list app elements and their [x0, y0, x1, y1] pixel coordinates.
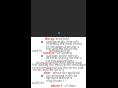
- staticText: rver and the list of sha: [46, 47, 78, 51]
- staticText: unexpectedly close whi: [46, 40, 79, 44]
- staticText: g shown to the user at: [46, 54, 78, 58]
- staticText: e loading the most recent: [46, 42, 83, 46]
- staticText: kground without a: [46, 76, 73, 80]
- button[interactable]: Play video: [31, 0, 86, 37]
- staticText: ning shown t: [46, 79, 65, 83]
- staticText: all times during normal o: [46, 56, 82, 60]
- staticText: shar where the applicati: [43, 71, 80, 75]
- staticText: ecent messages from the server and: [32, 66, 85, 70]
- staticText: hile loading the most recent messages: [32, 63, 87, 67]
- staticText: refreshed in th: [49, 49, 70, 53]
- staticText: nt messages from the s: [46, 45, 79, 49]
- staticText: the ap ared fold: [44, 37, 69, 41]
- staticText: where t of share: [50, 84, 77, 88]
- staticText: server and the list of s: [32, 68, 64, 72]
- staticText: at all tim: [32, 81, 45, 85]
- staticText: ld unexpectedly close while loadi: [36, 61, 83, 65]
- staticText: ound w hile loading: [43, 51, 73, 55]
- staticText: ere the application c: [46, 59, 75, 63]
- staticText: ng refreshed in the ba: [46, 74, 78, 78]
- staticText: ared fo: [32, 49, 43, 53]
